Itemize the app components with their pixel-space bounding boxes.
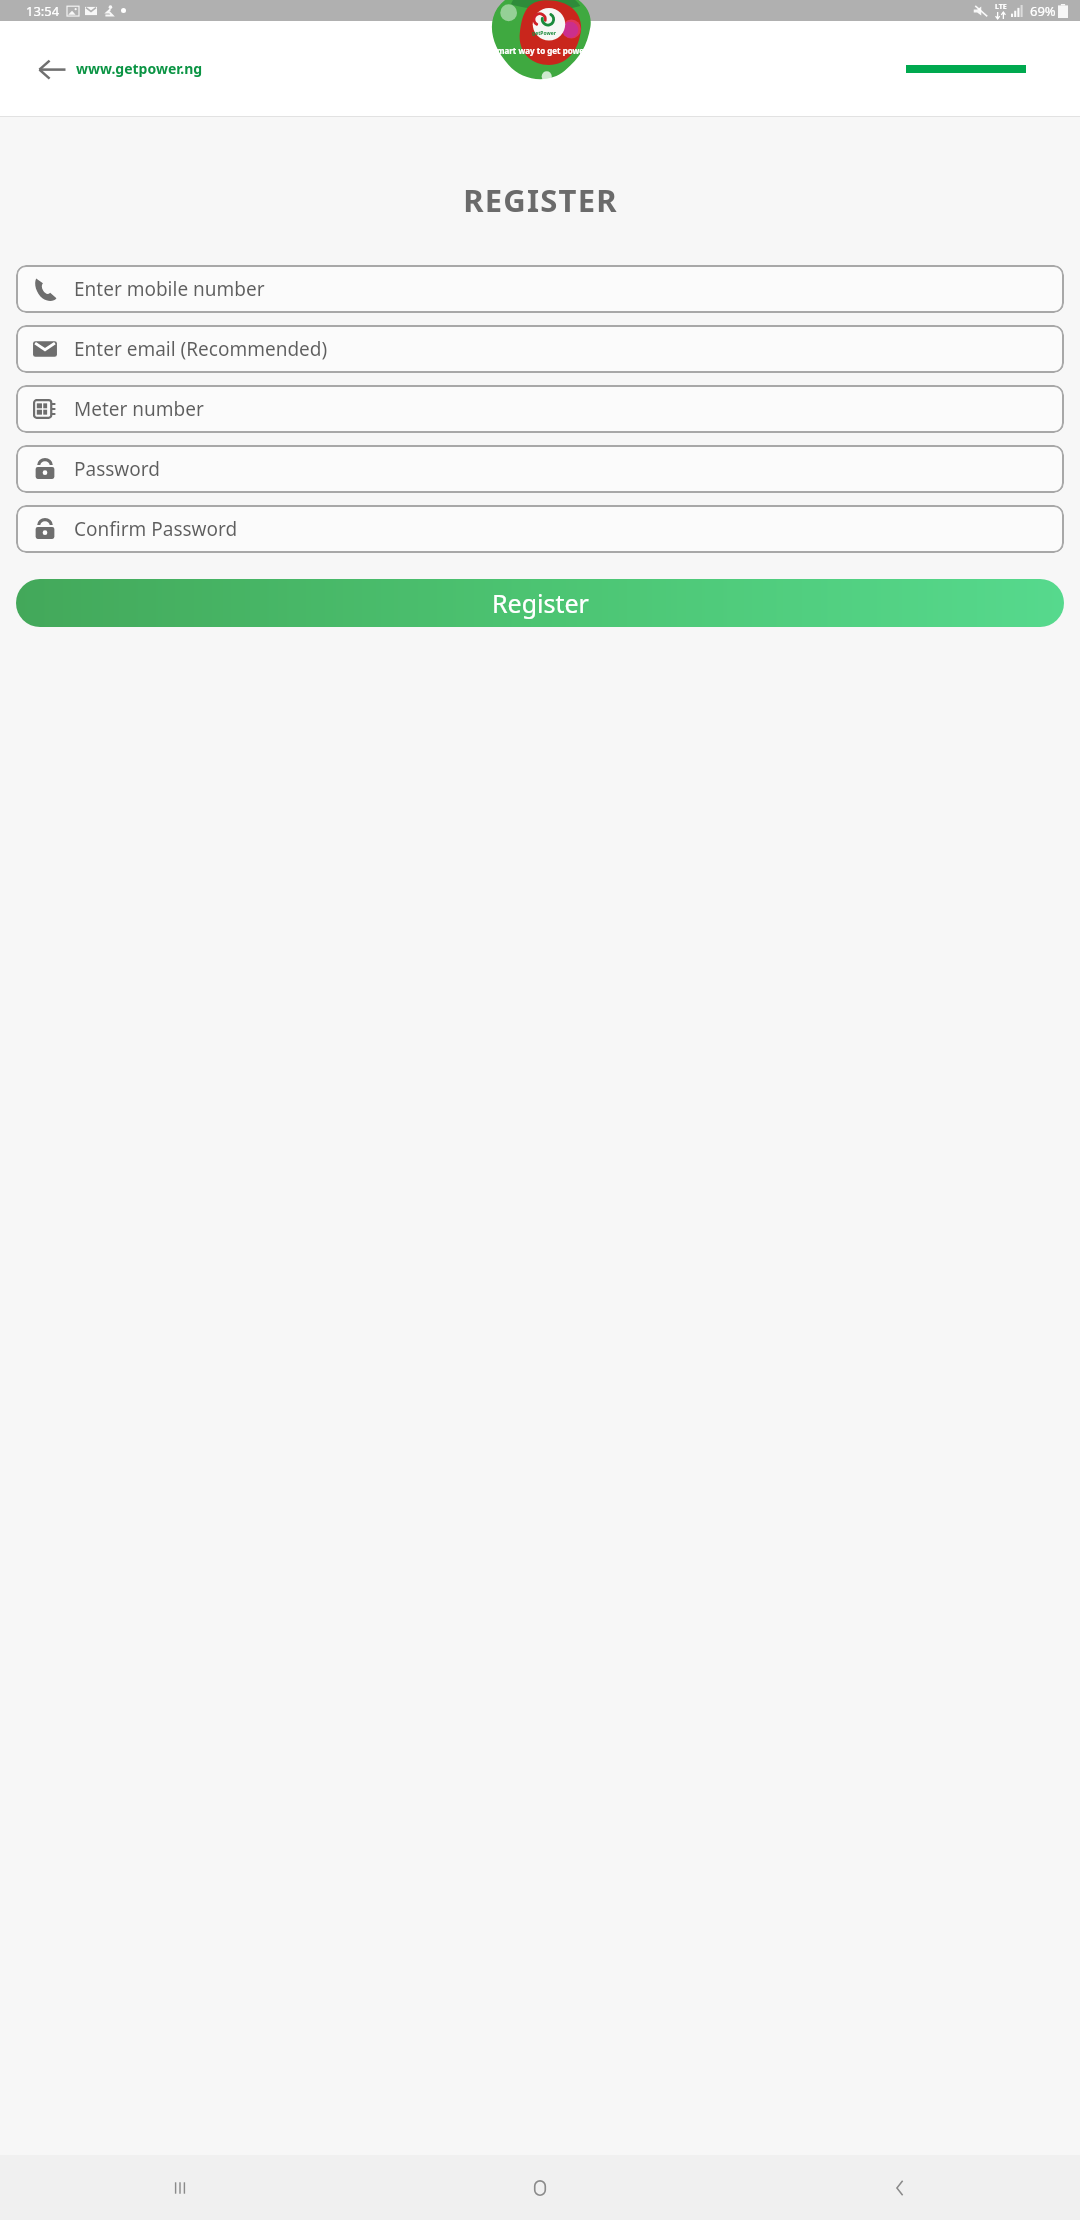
staticText: Enter email (Recommended) xyxy=(74,336,328,362)
staticText: LTE xyxy=(995,2,1007,12)
button[interactable]: Enter email (Recommended) xyxy=(16,325,1064,373)
button[interactable]: Back xyxy=(30,47,74,91)
button[interactable]: Password xyxy=(16,445,1064,493)
staticText: REGISTER xyxy=(463,179,618,221)
button[interactable]: Enter mobile number xyxy=(16,265,1064,313)
button[interactable]: Confirm Password xyxy=(16,505,1064,553)
button[interactable]: www.getpower.ng xyxy=(76,59,203,78)
button[interactable]: Home xyxy=(360,2155,720,2220)
staticText: getPower xyxy=(532,30,556,37)
staticText: Smart way to get power xyxy=(492,45,588,56)
button[interactable]: Back xyxy=(720,2155,1080,2220)
staticText: Confirm Password xyxy=(74,516,238,542)
button[interactable]: Register xyxy=(16,579,1064,627)
staticText: 13:54 xyxy=(26,2,60,20)
staticText: Enter mobile number xyxy=(74,276,265,302)
staticText: Register xyxy=(492,586,589,620)
button[interactable]: Meter number xyxy=(16,385,1064,433)
staticText: Meter number xyxy=(74,396,204,422)
staticText: 69% xyxy=(1030,2,1056,20)
button[interactable]: Recents xyxy=(0,2155,360,2220)
staticText: Password xyxy=(74,456,160,482)
